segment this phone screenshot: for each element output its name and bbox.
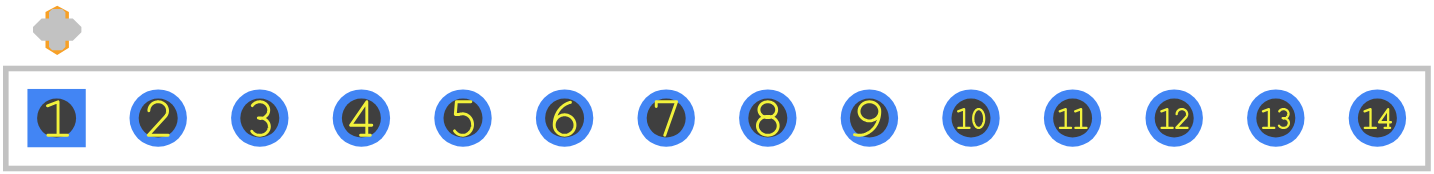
button[interactable]: 14 pin connector footprint drawing — [0, 0, 1434, 174]
